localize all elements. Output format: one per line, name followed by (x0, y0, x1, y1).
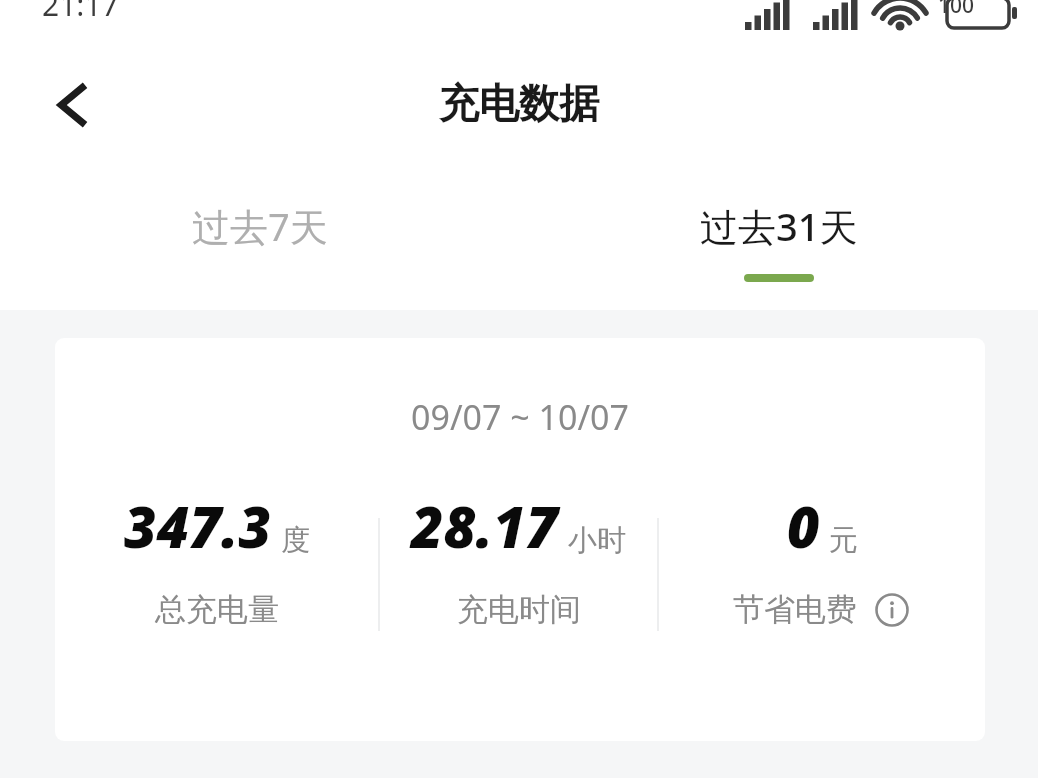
staticText: 28.17 (411, 488, 559, 564)
staticText: 过去7天 (192, 200, 328, 252)
button[interactable]: 过去31天 (519, 186, 1038, 306)
staticText: 21:17 (42, 0, 119, 16)
staticText: 度 (281, 522, 310, 559)
staticText: 347.3 (124, 488, 272, 564)
staticText: 总充电量 (155, 590, 279, 629)
staticText: 0 (787, 488, 820, 564)
button[interactable]: 过去7天 (0, 186, 519, 306)
staticText: 元 (829, 522, 858, 559)
staticText: 充电数据 (0, 78, 1038, 128)
staticText: 节省电费 (733, 590, 857, 629)
staticText: 小时 (568, 522, 626, 559)
staticText: 09/07 ~ 10/07 (55, 394, 985, 440)
button[interactable]: Saved electricity cost info (873, 591, 911, 629)
staticText: 过去31天 (700, 200, 858, 252)
staticText: 充电时间 (457, 590, 581, 629)
button[interactable]: Back (36, 66, 114, 144)
staticText: 100 (938, 0, 975, 20)
